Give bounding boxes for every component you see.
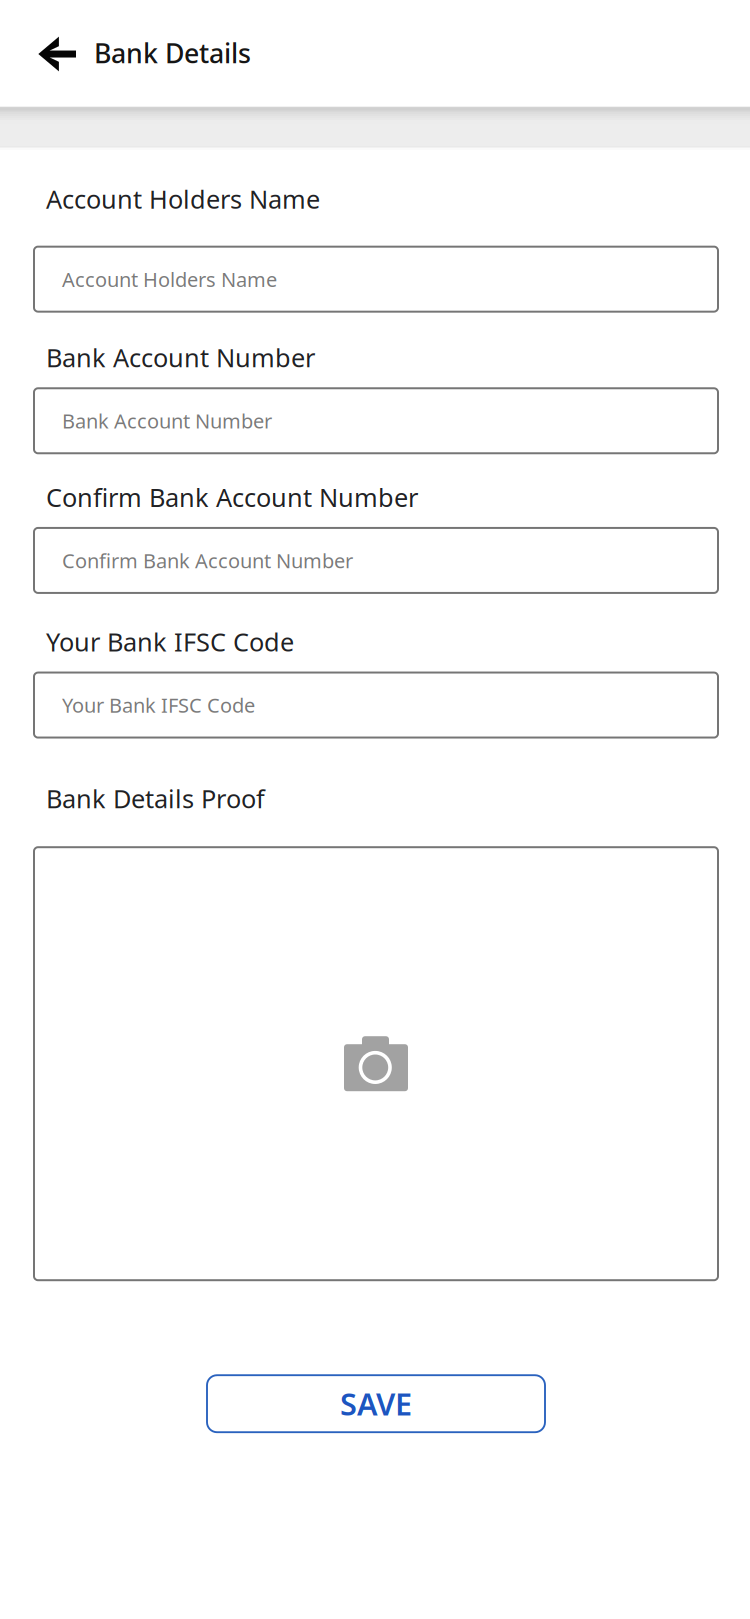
staticText: Bank Account Number	[62, 407, 272, 434]
button[interactable]: Account Holders Name	[34, 247, 718, 312]
staticText: Account Holders Name	[62, 266, 277, 292]
staticText: SAVE	[340, 1383, 412, 1424]
button[interactable]: Your Bank IFSC Code	[34, 673, 718, 738]
staticText: Bank Details	[94, 35, 251, 71]
staticText: Bank Details Proof	[46, 782, 265, 815]
button[interactable]: Bank Account Number	[34, 388, 718, 453]
staticText: Confirm Bank Account Number	[46, 480, 418, 514]
button[interactable]: Back	[35, 25, 80, 81]
button[interactable]: SAVE	[207, 1375, 545, 1432]
staticText: Bank Account Number	[46, 341, 315, 374]
button[interactable]: Confirm Bank Account Number	[34, 528, 718, 593]
button[interactable]: Add bank details proof photo	[34, 847, 718, 1280]
staticText: Your Bank IFSC Code	[62, 692, 255, 718]
staticText: Confirm Bank Account Number	[62, 547, 353, 574]
staticText: Your Bank IFSC Code	[46, 625, 294, 658]
staticText: Account Holders Name	[46, 182, 320, 216]
